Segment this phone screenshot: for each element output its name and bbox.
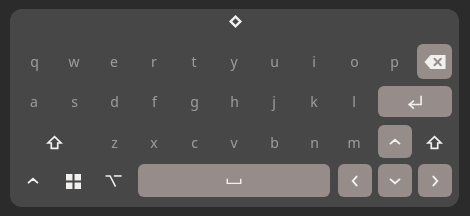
button[interactable]: q (16, 45, 52, 77)
staticText: l (352, 92, 356, 111)
staticText: i (312, 52, 316, 71)
button[interactable]: Backspace (417, 44, 452, 79)
button[interactable]: o (336, 45, 372, 77)
button[interactable]: k (296, 85, 332, 117)
staticText: c (191, 133, 198, 152)
staticText: j (272, 92, 276, 111)
staticText: s (71, 92, 78, 111)
button[interactable]: e (96, 45, 132, 77)
button[interactable]: x (136, 126, 172, 158)
staticText: b (270, 133, 279, 152)
button[interactable]: Keyboard handle (219, 10, 251, 32)
button[interactable]: r (136, 45, 172, 77)
staticText: d (110, 92, 119, 111)
button[interactable]: h (216, 85, 252, 117)
staticText: r (151, 52, 157, 71)
button[interactable]: w (56, 45, 92, 77)
staticText: v (230, 133, 238, 152)
staticText: q (30, 52, 39, 71)
button[interactable]: d (96, 85, 132, 117)
button[interactable]: s (56, 85, 92, 117)
staticText: o (350, 52, 359, 71)
button[interactable]: b (256, 126, 292, 158)
staticText: k (310, 92, 318, 111)
button[interactable]: Move right (418, 164, 452, 197)
staticText: m (347, 133, 361, 152)
button[interactable]: Space (138, 164, 330, 197)
staticText: f (152, 92, 157, 111)
button[interactable]: g (176, 85, 212, 117)
staticText: g (190, 92, 199, 111)
button[interactable]: p (376, 45, 412, 77)
button[interactable]: t (176, 45, 212, 77)
staticText: w (68, 52, 80, 71)
staticText: x (150, 133, 158, 152)
button[interactable]: Symbols (55, 164, 91, 198)
button[interactable]: Move down (378, 164, 412, 197)
button[interactable]: Shift (36, 125, 72, 159)
staticText: z (111, 133, 118, 152)
staticText: h (230, 92, 239, 111)
button[interactable]: u (256, 45, 292, 77)
button[interactable]: z (96, 126, 132, 158)
button[interactable]: j (256, 85, 292, 117)
staticText: u (270, 52, 279, 71)
staticText: e (110, 52, 118, 71)
button[interactable]: Enter (378, 86, 452, 117)
staticText: p (390, 52, 399, 71)
button[interactable]: a (16, 85, 52, 117)
staticText: y (230, 52, 238, 71)
button[interactable]: c (176, 126, 212, 158)
button[interactable]: f (136, 85, 172, 117)
button[interactable]: Shift (416, 125, 452, 159)
button[interactable]: n (296, 126, 332, 158)
button[interactable]: v (216, 126, 252, 158)
button[interactable]: y (216, 45, 252, 77)
button[interactable]: i (296, 45, 332, 77)
button[interactable]: Move left (338, 164, 372, 197)
button[interactable]: m (336, 126, 372, 158)
button[interactable]: More (15, 164, 51, 198)
button[interactable]: Option (95, 164, 131, 198)
button[interactable]: Move up (378, 125, 412, 158)
staticText: t (191, 52, 197, 71)
button[interactable]: l (336, 85, 372, 117)
staticText: n (310, 133, 319, 152)
staticText: a (30, 92, 38, 111)
